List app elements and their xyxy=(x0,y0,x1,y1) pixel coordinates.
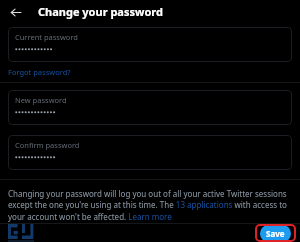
button[interactable]: Current password xyxy=(8,27,292,62)
button[interactable]: Confirm password xyxy=(8,135,292,170)
staticText: Current password xyxy=(15,32,78,42)
button[interactable]: Back xyxy=(5,2,25,22)
button[interactable]: New password xyxy=(8,90,292,125)
button[interactable]: Save xyxy=(260,225,291,242)
staticText: Save xyxy=(266,228,285,239)
staticText: Change your password xyxy=(38,4,163,19)
staticText: Changing your password will log you out … xyxy=(8,188,290,223)
staticText: Confirm password xyxy=(15,140,80,150)
staticText: New password xyxy=(15,95,67,105)
button[interactable]: Forgot password? xyxy=(8,67,71,77)
